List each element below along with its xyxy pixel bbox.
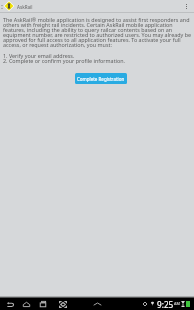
button[interactable]: More options [180,0,194,13]
button[interactable]: AskRail logo [4,1,14,11]
staticText: The AskRail® mobile application is desig… [3,16,192,49]
button[interactable]: Navigation drawer [0,0,4,13]
button[interactable]: Complete Registration [75,73,127,84]
staticText: 9:25 [157,299,174,310]
staticText: Complete Registration [77,76,125,82]
button[interactable]: Hide navigation bar [91,298,103,310]
button[interactable]: Back [3,298,17,310]
button[interactable]: Home [19,298,33,310]
button[interactable]: Screenshot [56,298,70,310]
staticText: AM [174,301,180,306]
button[interactable]: Recent apps [36,298,50,310]
staticText: AskRail [17,4,33,10]
staticText: 1. Verify your email address. 2. Complet… [3,52,126,65]
